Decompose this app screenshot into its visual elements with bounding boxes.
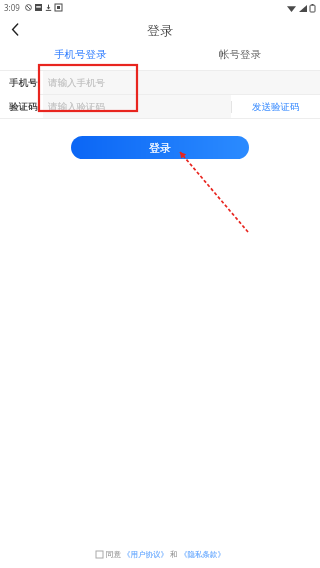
staticText: 手机号 — [9, 77, 38, 89]
button[interactable]: 《用户协议》 — [123, 550, 168, 559]
button[interactable]: 《隐私条款》 — [180, 550, 225, 559]
button[interactable]: 手机号登录 — [0, 44, 160, 70]
button[interactable]: 请输入手机号 — [43, 71, 320, 94]
staticText: 手机号登录 — [54, 48, 107, 61]
staticText: 登录 — [149, 141, 171, 155]
staticText: 请输入验证码 — [48, 101, 105, 113]
staticText: 请输入手机号 — [48, 77, 105, 89]
button[interactable]: 帐号登录 — [160, 44, 320, 70]
staticText: 验证码 — [9, 101, 38, 113]
staticText: 和 — [170, 550, 178, 559]
button[interactable]: 登录 — [71, 136, 249, 159]
staticText: 发送验证码 — [252, 101, 300, 113]
staticText: 帐号登录 — [219, 48, 261, 61]
staticText: 同意 — [106, 550, 121, 559]
button[interactable]: 同意 — [96, 550, 225, 559]
staticText: 3:09 — [4, 2, 20, 13]
button[interactable]: 发送验证码 — [232, 95, 320, 118]
staticText: 登录 — [147, 22, 173, 38]
button[interactable]: 返回 — [0, 15, 30, 44]
button[interactable]: 请输入验证码 — [43, 95, 231, 118]
